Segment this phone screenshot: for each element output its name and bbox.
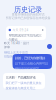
- staticText: 帮我把这段文字总结成三句要点: [9, 33, 42, 42]
- staticText: 所有记录均已加密保存在本地设备: [5, 16, 50, 20]
- staticText: 我们把下一版本的重点放在: [6, 81, 42, 85]
- staticText: 历史记录: [14, 5, 42, 14]
- staticText: 继续追问任何细节: [15, 67, 39, 71]
- staticText: 三天前 · 产品规划讨论: [6, 75, 36, 79]
- button[interactable]: 三天前 · 产品规划讨论: [3, 73, 45, 89]
- staticText: 昨天 16:40 · 设计评审: [4, 41, 29, 49]
- staticText: 搜索体验与离线可用上: [6, 86, 36, 90]
- button[interactable]: Profile: [47, 44, 52, 49]
- staticText: 查看并继续你的全部对话: [11, 12, 44, 16]
- staticText: 继续上次关于首页排版的讨论: [4, 51, 28, 58]
- staticText: 以下是三点核心内容可以: [15, 62, 48, 65]
- staticText: 好的，已经为你整理好: [15, 56, 45, 60]
- staticText: 今天 09:24: [12, 28, 28, 32]
- button[interactable]: 今天 09:24: [6, 26, 46, 40]
- button[interactable]: 好的，已经为你整理好: [12, 54, 52, 69]
